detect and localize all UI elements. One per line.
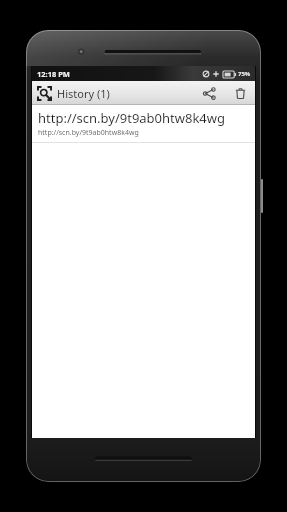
staticText: http://scn.by/9t9ab0htw8k4wg [38, 109, 226, 127]
staticText: 75% [238, 70, 251, 78]
button[interactable]: http://scn.by/9t9ab0htw8k4wg [32, 105, 255, 142]
staticText: 12:18 PM [37, 69, 70, 79]
button[interactable]: Delete history [225, 81, 255, 105]
staticText: http://scn.by/9t9ab0htw8k4wg [38, 128, 139, 138]
button[interactable]: Share [193, 81, 225, 105]
staticText: History (1) [57, 86, 110, 101]
button[interactable]: History (1) [32, 81, 193, 105]
